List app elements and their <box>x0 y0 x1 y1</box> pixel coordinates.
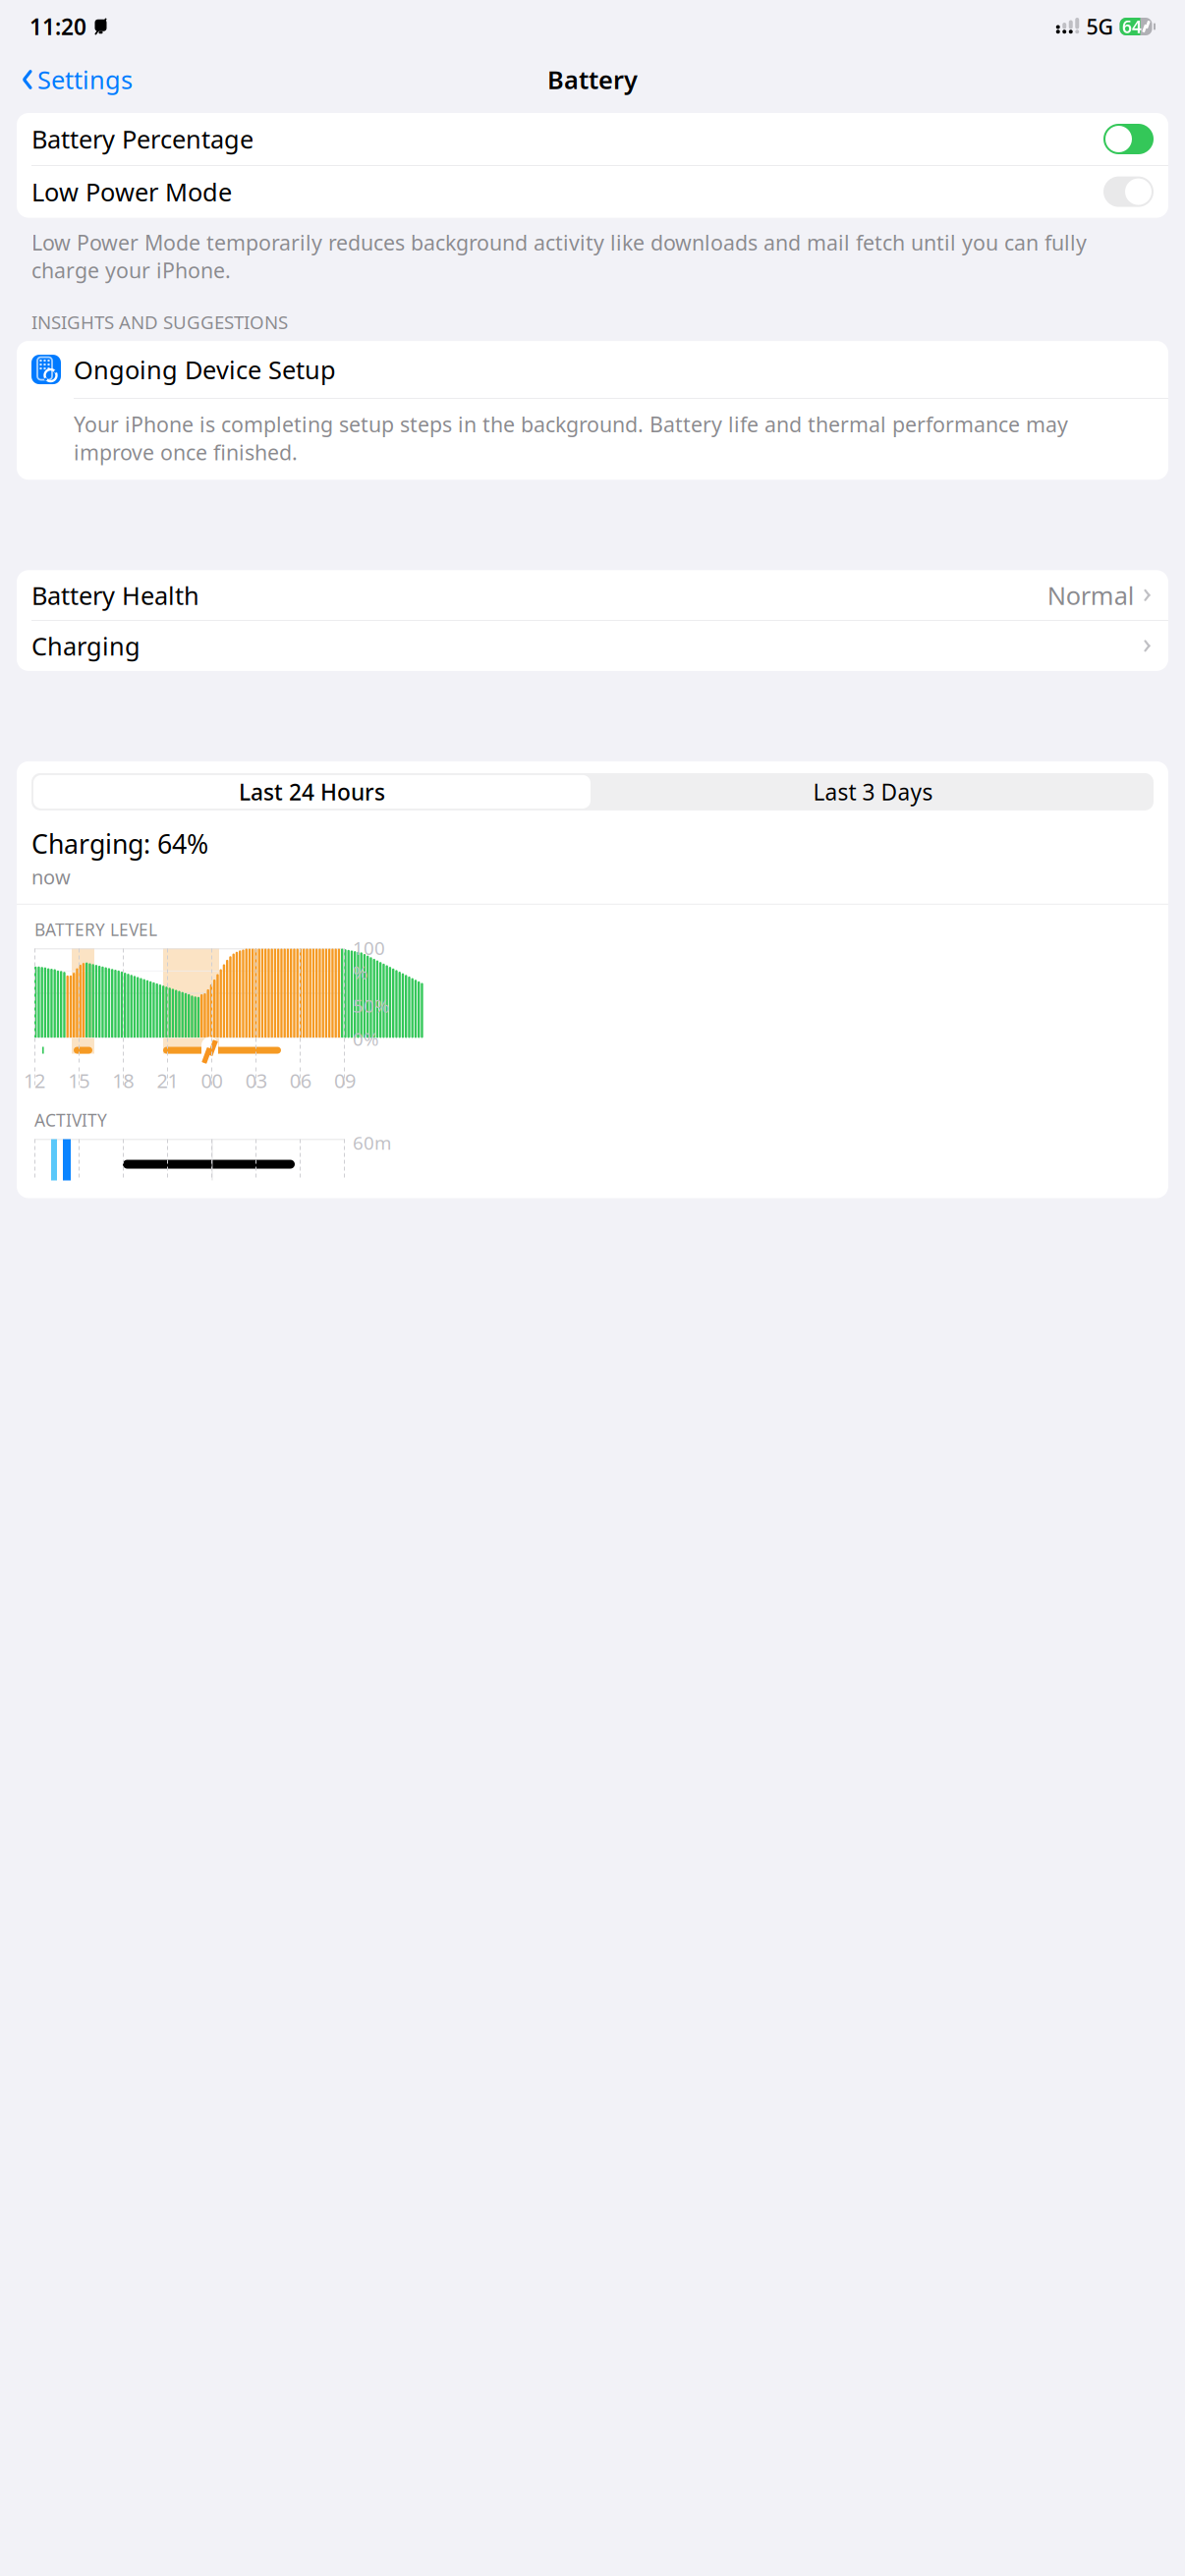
staticText: Battery Health <box>31 579 199 612</box>
staticText: Last 24 Hours <box>239 777 385 807</box>
staticText: 64 <box>1122 15 1142 38</box>
button[interactable]: Battery Percentage <box>17 113 1168 165</box>
button[interactable]: Charging <box>17 621 1168 671</box>
staticText: BATTERY LEVEL <box>34 918 157 941</box>
staticText: 50% <box>353 993 390 1018</box>
staticText: 06 <box>290 1067 311 1094</box>
staticText: Charging <box>31 629 141 662</box>
staticText: Battery <box>547 63 638 96</box>
staticText: 0% <box>353 1026 379 1051</box>
staticText: 15 <box>68 1067 90 1094</box>
staticText: Battery Percentage <box>31 123 254 156</box>
staticText: Low Power Mode <box>31 175 232 208</box>
button[interactable]: Last 3 Days <box>592 775 1154 808</box>
staticText: 12 <box>24 1067 45 1094</box>
staticText: Low Power Mode temporarily reduces backg… <box>31 229 1087 284</box>
staticText: ACTIVITY <box>34 1109 107 1131</box>
staticText: Settings <box>37 63 133 96</box>
staticText: Your iPhone is completing setup steps in… <box>74 410 1068 466</box>
staticText: 18 <box>112 1067 134 1094</box>
staticText: 5G <box>1086 13 1114 40</box>
staticText: 09 <box>334 1067 356 1094</box>
staticText: 60m <box>353 1130 391 1155</box>
staticText: 03 <box>245 1067 267 1094</box>
button[interactable]: Ongoing Device Setup <box>17 341 1168 398</box>
staticText: 21 <box>157 1067 178 1094</box>
staticText: now <box>31 864 71 890</box>
staticText: INSIGHTS AND SUGGESTIONS <box>31 310 288 334</box>
staticText: 11:20 <box>29 12 86 41</box>
staticText: 00 <box>201 1067 223 1094</box>
staticText: 100% <box>353 936 385 984</box>
staticText: Charging: 64% <box>31 826 208 861</box>
button[interactable]: Low Power Mode <box>17 166 1168 218</box>
button[interactable]: Battery Health <box>17 570 1168 620</box>
button[interactable]: Settings <box>12 55 139 104</box>
staticText: Ongoing Device Setup <box>74 353 336 386</box>
staticText: Last 3 Days <box>813 777 933 807</box>
staticText: Normal <box>1047 579 1135 612</box>
button[interactable]: Last 24 Hours <box>31 773 592 810</box>
